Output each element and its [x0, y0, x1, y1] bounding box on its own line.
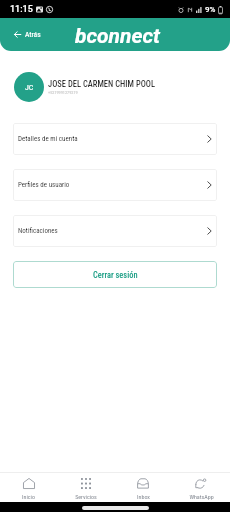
- button[interactable]: JC: [0, 72, 230, 102]
- staticText: Atrás: [25, 30, 41, 39]
- staticText: Perfiles de usuario: [18, 181, 70, 189]
- staticText: Cerrar sesión: [93, 270, 138, 280]
- button[interactable]: Notificaciones: [13, 215, 217, 247]
- staticText: WhatsApp: [189, 493, 214, 500]
- staticText: 9%: [205, 5, 216, 14]
- button[interactable]: Atrás: [0, 25, 51, 44]
- button[interactable]: Detalles de mi cuenta: [13, 123, 217, 155]
- staticText: Inbox: [137, 493, 150, 500]
- staticText: +5219991279219: [48, 90, 78, 95]
- staticText: 11:15: [10, 4, 33, 15]
- button[interactable]: Cerrar sesión: [13, 261, 217, 288]
- staticText: JOSE DEL CARMEN CHIM POOL: [48, 79, 155, 89]
- staticText: Notificaciones: [18, 227, 58, 235]
- button[interactable]: Inbox: [114, 473, 172, 500]
- button[interactable]: WhatsApp: [172, 473, 230, 500]
- staticText: Inicio: [22, 493, 35, 500]
- staticText: Servicios: [75, 493, 97, 500]
- staticText: Detalles de mi cuenta: [18, 135, 78, 143]
- staticText: JC: [25, 83, 34, 92]
- button[interactable]: Servicios: [57, 473, 114, 500]
- button[interactable]: Inicio: [0, 473, 57, 500]
- button[interactable]: Perfiles de usuario: [13, 169, 217, 201]
- staticText: bconnect: [75, 24, 160, 49]
